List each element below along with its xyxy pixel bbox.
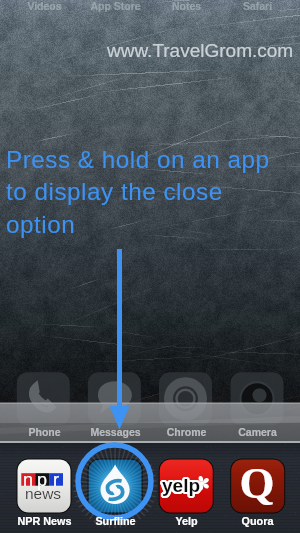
staticText: yelp	[162, 474, 201, 495]
staticText: Camera	[221, 426, 294, 533]
staticText: yelp	[161, 475, 200, 496]
staticText: Notes	[150, 0, 223, 533]
staticText: yelp	[160, 474, 199, 495]
staticText: n	[21, 470, 35, 490]
staticText: yelp	[160, 475, 199, 496]
staticText: Quora	[221, 515, 294, 533]
staticText: yelp	[162, 475, 201, 496]
button[interactable]: Camera	[221, 426, 294, 533]
staticText: yelp	[161, 476, 200, 497]
button[interactable]: NPR News	[8, 515, 81, 533]
button[interactable]: Videos	[8, 0, 81, 533]
button[interactable]: Safari	[221, 0, 294, 533]
staticText: r	[49, 470, 63, 490]
staticText: yelp	[163, 473, 202, 494]
button[interactable]: Surfline	[79, 515, 152, 533]
staticText: yelp	[161, 477, 200, 498]
staticText: Surfline	[79, 515, 152, 533]
staticText: Phone	[8, 426, 81, 533]
staticText: www.TravelGrom.com	[107, 40, 294, 61]
staticText: yelp	[161, 474, 200, 495]
staticText: Videos	[8, 0, 81, 533]
staticText: yelp	[161, 473, 200, 494]
button[interactable]: Phone	[8, 426, 81, 533]
staticText: p	[35, 470, 49, 490]
staticText: yelp	[163, 474, 202, 495]
staticText: yelp	[162, 476, 201, 497]
staticText: news	[24, 485, 62, 502]
staticText: Messages	[79, 426, 152, 533]
staticText: yelp	[164, 476, 203, 497]
button[interactable]: Messages	[79, 426, 152, 533]
staticText: yelp	[163, 475, 202, 496]
staticText: Safari	[221, 0, 294, 533]
staticText: yelp	[164, 474, 203, 495]
button[interactable]: Chrome	[150, 426, 223, 533]
staticText: App Store	[79, 0, 152, 533]
button[interactable]: Notes	[150, 0, 223, 533]
button[interactable]: Yelp	[150, 515, 223, 533]
staticText: yelp	[163, 476, 202, 497]
button[interactable]: App Store	[79, 0, 152, 533]
staticText: Q	[232, 458, 282, 508]
staticText: yelp	[160, 476, 199, 497]
staticText: yelp	[162, 473, 201, 494]
staticText: Press & hold on an app to display the cl…	[6, 146, 300, 238]
staticText: yelp	[162, 475, 201, 496]
staticText: yelp	[163, 477, 202, 498]
staticText: yelp	[162, 477, 201, 498]
staticText: yelp	[164, 475, 203, 496]
staticText: Yelp	[150, 515, 223, 533]
staticText: NPR News	[8, 515, 81, 533]
button[interactable]: Quora	[221, 515, 294, 533]
staticText: Chrome	[150, 426, 223, 533]
